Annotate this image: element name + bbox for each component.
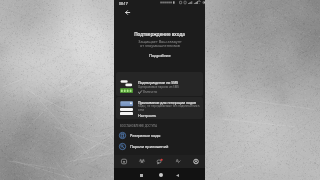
button[interactable]: Профиль: [187, 155, 205, 168]
button[interactable]: Подробнее: [147, 52, 173, 59]
staticText: Пароли приложений: [130, 144, 169, 149]
staticText: Защищает Ваш аккаунт от злоумышленников: [138, 39, 182, 48]
staticText: Подтверждение по SMS: [138, 80, 179, 85]
button[interactable]: Сервисы: [169, 155, 187, 168]
staticText: Настроить: [138, 113, 157, 118]
button[interactable]: Пароли приложений: [114, 141, 205, 152]
staticText: Подробнее: [149, 53, 171, 58]
button[interactable]: Назад: [172, 170, 182, 180]
staticText: Коды, не передаваемые без подключения к …: [138, 104, 200, 112]
staticText: Одноразовые пароли из SMS: [138, 85, 179, 89]
button[interactable]: Подтверждение по SMS: [116, 72, 203, 96]
staticText: Резервные коды: [130, 133, 161, 138]
button[interactable]: Сообщения: [151, 155, 169, 168]
button[interactable]: Контакты: [133, 155, 151, 168]
button[interactable]: Приложение для генерации кодов: [116, 97, 203, 119]
staticText: 08:17: [119, 1, 128, 6]
button[interactable]: Карты: [114, 155, 133, 168]
staticText: Включено: [143, 90, 158, 94]
button[interactable]: Резервные коды: [114, 130, 205, 141]
button[interactable]: Недавние: [136, 170, 146, 180]
button[interactable]: Назад: [122, 7, 133, 18]
staticText: Приложение для генерации кодов: [138, 100, 197, 105]
staticText: Подтверждение входа: [134, 31, 185, 37]
staticText: ВОССТАНОВЛЕНИЕ ДОСТУПА: [120, 124, 157, 128]
button[interactable]: Настроить: [138, 113, 157, 118]
button[interactable]: Домой: [156, 170, 166, 180]
